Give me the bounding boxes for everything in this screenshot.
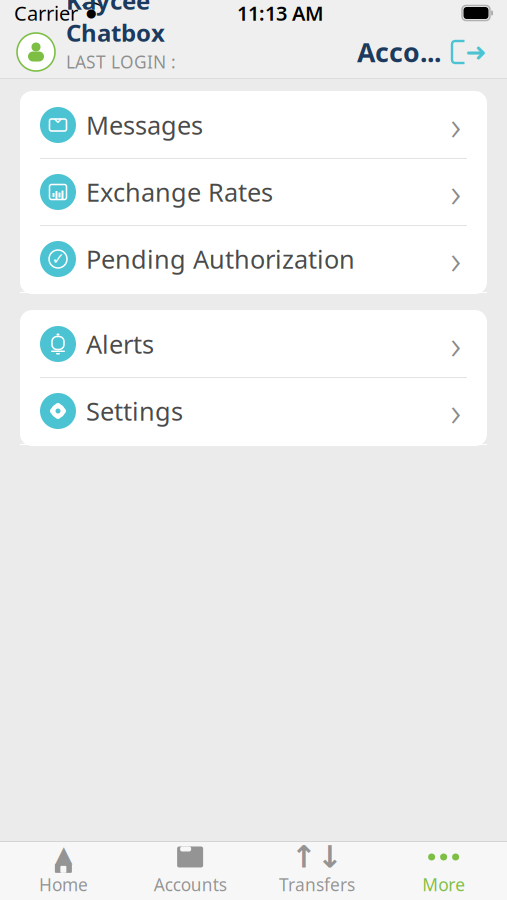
staticText: ›	[450, 165, 461, 218]
staticText: Messages	[86, 108, 203, 142]
staticText: ⌄	[50, 107, 65, 127]
button[interactable]: Alerts	[20, 311, 487, 378]
staticText: Transfers	[279, 873, 355, 896]
staticText: ›	[450, 317, 461, 370]
staticText: ✓	[51, 250, 64, 268]
staticText: Settings	[86, 394, 183, 428]
staticText: ›	[450, 232, 461, 285]
staticText: Pending Authorization	[86, 242, 355, 276]
staticText: LAST LOGIN : 19/08/2021 11:02:04.0	[66, 50, 176, 119]
button[interactable]: Log out	[445, 34, 491, 70]
button[interactable]: Settings	[20, 378, 487, 445]
staticText: ↑	[291, 840, 317, 874]
staticText: ↓	[317, 840, 343, 874]
staticText: More	[422, 873, 465, 896]
staticText: Acco...	[357, 34, 441, 70]
staticText: ⌒	[80, 0, 101, 26]
button[interactable]: ⌄	[20, 92, 487, 159]
button[interactable]: ▲	[0, 838, 127, 900]
staticText: ➜	[465, 38, 486, 66]
staticText: Alerts	[86, 327, 154, 361]
staticText: Kaycee Chatbox	[66, 0, 165, 48]
button[interactable]: Accounts	[127, 838, 254, 900]
button[interactable]: Acco...	[353, 28, 445, 76]
staticText: Accounts	[154, 873, 227, 896]
button[interactable]: ✓	[20, 226, 487, 293]
staticText: Carrier	[14, 0, 78, 26]
staticText: Home	[39, 873, 88, 896]
staticText: ›	[450, 384, 461, 437]
staticText: ▲	[55, 841, 72, 867]
staticText: 11:13 AM	[237, 0, 324, 26]
staticText: Exchange Rates	[86, 175, 273, 209]
staticText: ●	[86, 6, 96, 20]
button[interactable]: ↑	[253, 838, 380, 900]
button[interactable]: Exchange Rates	[20, 159, 487, 226]
button[interactable]: More	[380, 838, 507, 900]
staticText: ›	[450, 98, 461, 151]
